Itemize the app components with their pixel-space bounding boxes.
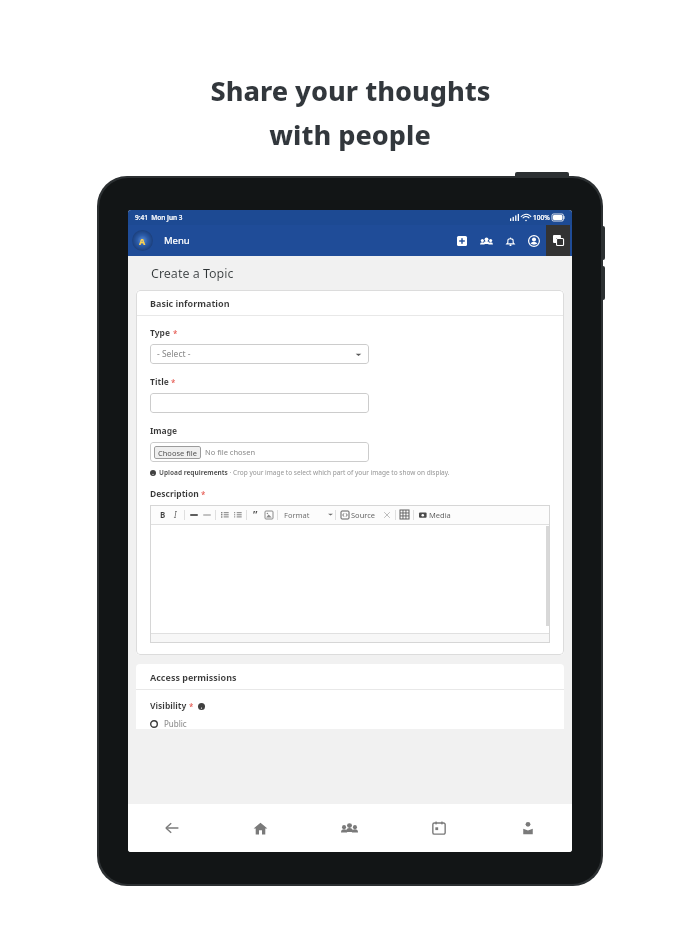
button[interactable]: Choose file	[150, 442, 369, 462]
staticText: Choose file	[158, 448, 197, 458]
staticText: *	[171, 328, 178, 339]
staticText: Share your thoughts	[210, 72, 491, 109]
button[interactable]: Groups	[305, 804, 394, 852]
button[interactable]: Add	[450, 229, 474, 253]
staticText: ”	[253, 508, 258, 522]
staticText: Menu	[164, 234, 190, 247]
button[interactable]	[150, 393, 369, 413]
button[interactable]: Home	[216, 804, 305, 852]
button[interactable]: Editor tool	[218, 507, 231, 522]
button[interactable]: Calendar	[394, 804, 483, 852]
button[interactable]: Groups	[474, 229, 498, 253]
staticText: Upload requirements	[159, 468, 228, 477]
button[interactable]: Home logo	[132, 230, 153, 251]
button[interactable]: Editor tool	[249, 507, 262, 522]
staticText: *	[169, 377, 176, 388]
button[interactable]: Back	[128, 804, 216, 852]
staticText: Visibility	[150, 700, 187, 712]
staticText: Title	[150, 376, 169, 388]
button[interactable]: Account	[522, 229, 546, 253]
staticText: Format	[284, 510, 310, 520]
button[interactable]: Media	[429, 510, 451, 520]
button[interactable]: Library	[483, 804, 572, 852]
staticText: Type	[150, 327, 171, 339]
button[interactable]: Editor tool	[231, 507, 244, 522]
staticText: Description	[150, 488, 199, 500]
button[interactable]: Editor tool	[187, 507, 200, 522]
staticText: Public	[164, 718, 187, 729]
button[interactable]: Notifications	[498, 229, 522, 253]
button[interactable]: Editor tool	[416, 507, 429, 522]
button[interactable]: Menu	[162, 230, 192, 251]
staticText: Image	[150, 425, 178, 437]
button[interactable]: Editor tool	[200, 507, 213, 522]
staticText: 100%	[533, 213, 550, 222]
button[interactable]: Source	[351, 510, 380, 520]
button[interactable]: Editor tool	[156, 507, 169, 522]
staticText: 9:41 Mon Jun 3	[135, 213, 183, 222]
staticText: · Crop your image to select which part o…	[228, 468, 450, 477]
staticText: - Select -	[157, 348, 191, 360]
button[interactable]: Translate	[546, 225, 570, 256]
button[interactable]: Public	[150, 718, 187, 729]
button[interactable]: Editor tool	[338, 507, 351, 522]
staticText: *	[199, 489, 206, 500]
staticText: *	[187, 701, 194, 712]
button[interactable]: - Select -	[150, 344, 369, 364]
staticText: with people	[269, 116, 431, 153]
staticText: No file chosen	[205, 447, 256, 457]
button[interactable]: Editor tool	[398, 507, 411, 522]
staticText: A	[139, 235, 146, 247]
button[interactable]: Editor tool	[262, 507, 275, 522]
button[interactable]: Editor tool	[380, 507, 393, 522]
button[interactable]: Format	[280, 510, 314, 520]
staticText: Source	[351, 510, 376, 520]
staticText: Access permissions	[150, 671, 237, 683]
staticText: Basic information	[150, 297, 230, 309]
button[interactable]: Editor tool	[169, 507, 182, 522]
staticText: I	[174, 509, 177, 520]
staticText: Media	[429, 510, 451, 520]
staticText: Create a Topic	[151, 265, 234, 282]
staticText: B	[160, 509, 166, 520]
